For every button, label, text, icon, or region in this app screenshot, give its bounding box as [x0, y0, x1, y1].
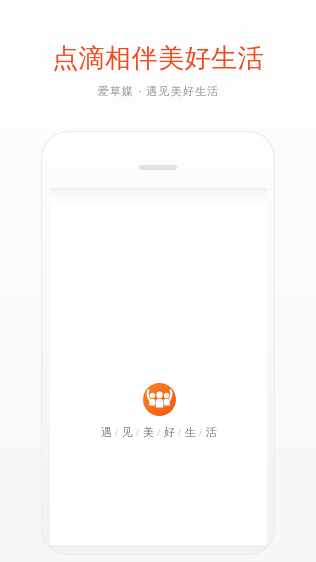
- staticText: 活: [206, 425, 217, 439]
- button[interactable]: 爱草媒 应用图标: [101, 383, 217, 439]
- staticText: 点滴相伴美好生活: [52, 42, 264, 75]
- staticText: /: [115, 426, 119, 438]
- staticText: /: [136, 426, 140, 438]
- staticText: 美: [143, 425, 154, 439]
- staticText: 见: [122, 425, 133, 439]
- staticText: /: [199, 426, 203, 438]
- staticText: /: [178, 426, 182, 438]
- staticText: 生: [185, 425, 196, 439]
- staticText: 爱草媒 · 遇见美好生活: [97, 83, 220, 98]
- staticText: 遇: [101, 425, 112, 439]
- staticText: 好: [164, 425, 175, 439]
- staticText: /: [157, 426, 161, 438]
